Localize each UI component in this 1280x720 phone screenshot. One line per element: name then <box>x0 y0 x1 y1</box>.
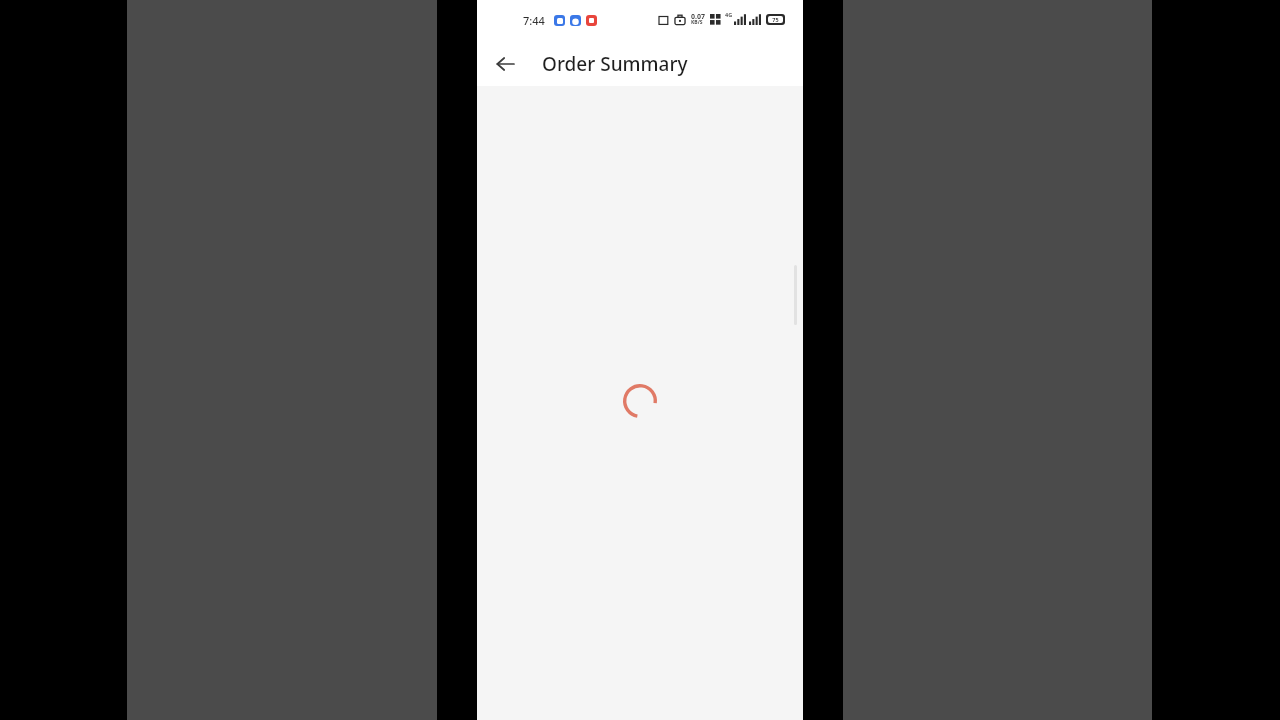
staticText: Order Summary <box>542 51 688 77</box>
staticText: 0.07 <box>691 12 705 22</box>
staticText: 4G <box>725 11 733 18</box>
staticText: 75 <box>772 16 779 23</box>
button[interactable]: Back <box>487 46 523 82</box>
staticText: 7:44 <box>523 13 545 28</box>
staticText: KB/S <box>691 19 703 26</box>
